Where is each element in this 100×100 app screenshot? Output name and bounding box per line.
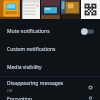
button[interactable]: Media visibility xyxy=(0,58,100,76)
button[interactable]: Mute notifications xyxy=(0,22,100,40)
button[interactable]: Shared media item xyxy=(0,0,20,19)
button[interactable]: Shared media item xyxy=(81,0,100,19)
button[interactable]: Encryption xyxy=(0,96,100,100)
staticText: Media visibility xyxy=(7,64,42,71)
button[interactable]: Disappearing messages xyxy=(0,77,100,96)
button[interactable]: Info xyxy=(86,83,94,91)
staticText: Encryption xyxy=(7,96,33,100)
staticText: Off xyxy=(7,88,13,93)
button[interactable]: Shared media item xyxy=(41,0,60,19)
staticText: Mute notifications xyxy=(7,28,50,35)
staticText: Custom notifications xyxy=(7,46,56,53)
button[interactable]: Mute notifications toggle xyxy=(81,28,94,35)
button[interactable]: Custom notifications xyxy=(0,40,100,58)
button[interactable]: Shared media item xyxy=(21,0,40,19)
button[interactable]: Info xyxy=(86,96,94,100)
staticText: Disappearing messages xyxy=(7,80,64,87)
button[interactable]: Shared media item xyxy=(61,0,80,19)
